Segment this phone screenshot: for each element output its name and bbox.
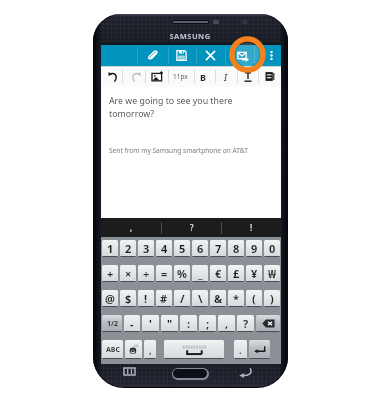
button[interactable]: 7 xyxy=(210,240,226,257)
staticText: \ xyxy=(198,291,203,306)
button[interactable]: @ xyxy=(102,290,118,307)
button[interactable]: 1/2 xyxy=(102,315,122,332)
button[interactable]: ₩ xyxy=(264,265,280,282)
button[interactable]: Discard xyxy=(196,45,224,66)
other: Menu xyxy=(124,368,135,375)
button[interactable]: 11px xyxy=(170,66,190,87)
button[interactable]: ÷ xyxy=(138,265,154,282)
button[interactable]: $ xyxy=(120,290,136,307)
staticText: ! xyxy=(144,291,148,306)
staticText: 7 xyxy=(215,241,222,256)
staticText: 1 xyxy=(107,241,114,256)
button[interactable]: Space xyxy=(164,340,224,359)
staticText: , xyxy=(130,222,133,233)
button[interactable]: € xyxy=(210,265,226,282)
button[interactable]: \ xyxy=(192,290,208,307)
other: Send highlighted xyxy=(229,36,266,73)
staticText: " xyxy=(167,316,173,331)
staticText: + xyxy=(107,266,114,281)
button[interactable]: Send xyxy=(228,45,257,66)
staticText: 9 xyxy=(251,241,258,256)
button[interactable]: B xyxy=(194,66,211,87)
button[interactable]: Save draft xyxy=(167,45,195,66)
staticText: £ xyxy=(233,266,240,281)
button[interactable]: ' xyxy=(142,315,159,332)
other: Back xyxy=(239,367,252,377)
button[interactable]: Underline xyxy=(239,66,257,87)
staticText: @ xyxy=(105,291,115,306)
button[interactable]: 1 xyxy=(102,240,118,257)
staticText: , xyxy=(225,316,229,331)
button[interactable]: , xyxy=(144,340,156,359)
staticText: 8 xyxy=(233,241,240,256)
button[interactable]: 4 xyxy=(156,240,172,257)
button[interactable]: = xyxy=(156,265,172,282)
button[interactable]: 6 xyxy=(192,240,208,257)
button[interactable]: Redo xyxy=(126,66,144,87)
staticText: ? xyxy=(243,316,249,331)
button[interactable]: ABC xyxy=(102,340,123,359)
button[interactable]: 2 xyxy=(120,240,136,257)
staticText: * xyxy=(233,291,239,306)
button[interactable]: 0 xyxy=(264,240,280,257)
staticText: 5 xyxy=(179,241,186,256)
button[interactable]: Undo xyxy=(104,66,122,87)
staticText: # xyxy=(160,291,168,306)
button[interactable]: , xyxy=(218,315,235,332)
button[interactable]: - xyxy=(124,315,140,332)
staticText: , xyxy=(149,344,152,356)
button[interactable]: 9 xyxy=(246,240,262,257)
button[interactable]: Insert image xyxy=(149,66,167,87)
staticText: B xyxy=(200,71,206,83)
staticText: ABC xyxy=(106,345,120,355)
staticText: 4 xyxy=(161,241,168,256)
button[interactable]: + xyxy=(102,265,118,282)
button[interactable]: Backspace xyxy=(256,315,280,332)
button[interactable]: Attach file xyxy=(138,45,166,66)
button[interactable]: . xyxy=(234,340,247,359)
button[interactable]: ( xyxy=(246,290,262,307)
button[interactable]: " xyxy=(161,315,178,332)
button[interactable]: ? xyxy=(162,218,221,237)
button[interactable]: # xyxy=(156,290,172,307)
staticText: ! xyxy=(250,222,253,233)
button[interactable]: % xyxy=(174,265,190,282)
button[interactable]: £ xyxy=(228,265,244,282)
staticText: I xyxy=(224,71,228,83)
button[interactable]: Home xyxy=(172,368,209,380)
button[interactable]: × xyxy=(120,265,136,282)
button[interactable]: ) xyxy=(264,290,280,307)
button[interactable]: _ xyxy=(192,265,208,282)
button[interactable]: , xyxy=(101,218,161,237)
button[interactable]: * xyxy=(228,290,244,307)
staticText: 1/2 xyxy=(107,319,118,329)
staticText: Are we going to see you there tomorrow? xyxy=(109,95,233,120)
button[interactable]: 5 xyxy=(174,240,190,257)
staticText: . xyxy=(239,344,242,356)
button[interactable]: ; xyxy=(199,315,216,332)
button[interactable]: : xyxy=(180,315,197,332)
button[interactable]: ! xyxy=(138,290,154,307)
button[interactable]: & xyxy=(210,290,226,307)
button[interactable]: ! xyxy=(222,218,281,237)
button[interactable]: Text color xyxy=(260,66,278,87)
button[interactable]: ? xyxy=(237,315,254,332)
staticText: Sent from my Samsung smartphone on AT&T xyxy=(109,146,248,155)
button[interactable]: Emoji xyxy=(125,340,142,359)
button[interactable]: ¥ xyxy=(246,265,262,282)
staticText: SAMSUNG xyxy=(160,31,220,41)
staticText: € xyxy=(215,266,222,281)
button[interactable]: 8 xyxy=(228,240,244,257)
staticText: ) xyxy=(270,291,274,306)
staticText: ¥ xyxy=(251,266,258,281)
staticText: _ xyxy=(198,266,203,281)
staticText: ? xyxy=(190,222,194,233)
button[interactable]: Enter xyxy=(249,340,270,359)
staticText: 0 xyxy=(269,241,276,256)
button[interactable]: More options xyxy=(257,45,285,66)
button[interactable]: / xyxy=(174,290,190,307)
staticText: & xyxy=(214,291,223,306)
button[interactable]: 3 xyxy=(138,240,154,257)
button[interactable]: I xyxy=(217,66,234,87)
staticText: 2 xyxy=(125,241,132,256)
